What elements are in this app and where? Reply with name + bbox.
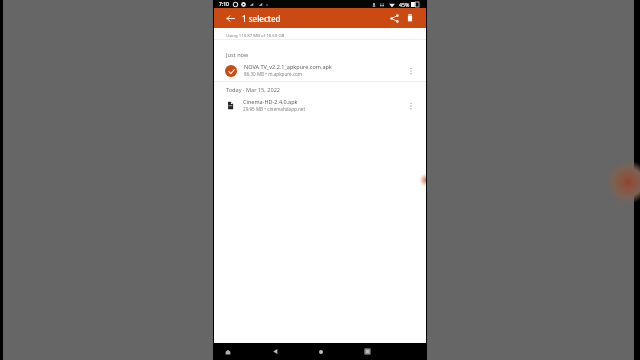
button[interactable]: Cinema-HD-2.4.0.apk (214, 95, 426, 116)
staticText: Just now (226, 51, 249, 59)
staticText: 45% (399, 1, 410, 8)
staticText: Using 110.87 MB of 10.60 GB (226, 32, 285, 38)
button[interactable]: Delete (402, 10, 418, 26)
button[interactable]: Share (386, 10, 402, 26)
button[interactable]: Recents (356, 343, 378, 360)
button[interactable]: Screenshot (217, 343, 239, 360)
staticText: 1 selected (242, 13, 281, 24)
button[interactable]: Back (264, 343, 286, 360)
button[interactable]: More options (402, 62, 420, 80)
staticText: Cinema-HD-2.4.0.apk (243, 98, 298, 105)
staticText: 7:10 (219, 1, 229, 8)
button[interactable]: Home (310, 343, 332, 360)
staticText: 29.95 MB • cinemahdapp.net (243, 106, 306, 112)
staticText: Today · Mar 15, 2022 (226, 86, 281, 94)
staticText: 86.30 MB • m.apkpure.com (244, 71, 303, 77)
staticText: NOVA TV_v2.2.1_apkpure.com.apk (244, 63, 332, 70)
button[interactable]: More options (402, 97, 420, 115)
button[interactable]: NOVA TV_v2.2.1_apkpure.com.apk (214, 60, 426, 81)
button[interactable]: Back (224, 12, 237, 25)
